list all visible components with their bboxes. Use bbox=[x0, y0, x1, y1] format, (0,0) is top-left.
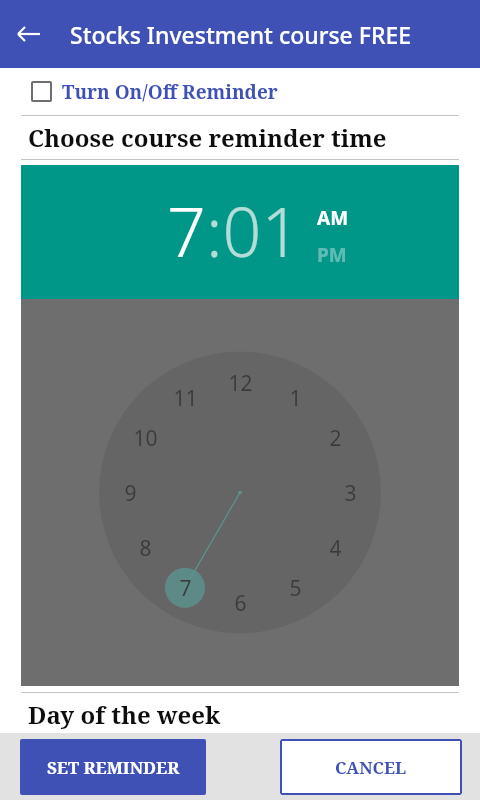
staticText: 10 bbox=[133, 424, 158, 453]
button[interactable]: CANCEL bbox=[280, 739, 462, 795]
staticText: 5 bbox=[289, 574, 302, 603]
staticText: 9 bbox=[124, 479, 137, 508]
button[interactable]: 3 bbox=[330, 473, 370, 513]
button[interactable]: 1 bbox=[275, 378, 315, 418]
button[interactable]: 9 bbox=[110, 473, 150, 513]
button[interactable]: PM bbox=[317, 242, 347, 268]
staticText: 1 bbox=[289, 384, 302, 413]
staticText: 3 bbox=[344, 479, 357, 508]
staticText: Stocks Investment course FREE bbox=[70, 19, 412, 50]
button[interactable]: 10 bbox=[125, 418, 165, 458]
staticText: CANCEL bbox=[335, 756, 407, 779]
staticText: Day of the week bbox=[28, 698, 221, 731]
button[interactable]: 12 bbox=[220, 363, 260, 403]
button[interactable]: 7 bbox=[165, 568, 205, 608]
button[interactable]: 8 bbox=[125, 528, 165, 568]
button[interactable]: SET REMINDER bbox=[20, 739, 206, 795]
staticText: Turn On/Off Reminder bbox=[62, 79, 278, 105]
staticText: 4 bbox=[329, 534, 342, 563]
button[interactable]: AM bbox=[317, 205, 349, 231]
button[interactable]: 1 bbox=[21, 299, 459, 686]
staticText: 6 bbox=[234, 589, 247, 618]
button[interactable]: Turn On/Off Reminder bbox=[0, 68, 480, 115]
button[interactable]: 11 bbox=[165, 378, 205, 418]
button[interactable]: 6 bbox=[220, 583, 260, 623]
staticText: 12 bbox=[228, 369, 253, 398]
staticText: Choose course reminder time bbox=[28, 121, 387, 154]
staticText: 2 bbox=[329, 424, 342, 453]
button[interactable]: Back bbox=[8, 13, 50, 55]
button[interactable]: :01 bbox=[206, 184, 301, 277]
staticText: 11 bbox=[173, 384, 198, 413]
staticText: SET REMINDER bbox=[47, 756, 180, 779]
button[interactable]: 2 bbox=[315, 418, 355, 458]
button[interactable]: 7 bbox=[167, 184, 206, 277]
staticText: 7 bbox=[179, 574, 192, 603]
button[interactable]: 4 bbox=[315, 528, 355, 568]
button[interactable]: 5 bbox=[275, 568, 315, 608]
staticText: 8 bbox=[139, 534, 152, 563]
